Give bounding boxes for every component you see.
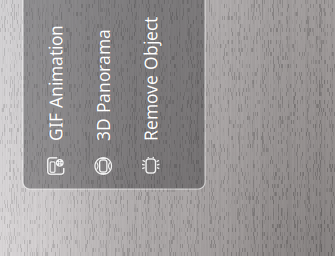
staticText: GIF Animation [60, 18, 176, 41]
staticText: Remove Object [60, 113, 184, 136]
button[interactable]: 3D Panorama [12, 53, 215, 100]
button[interactable]: GIF Animation [12, 5, 215, 53]
button[interactable]: Remove Object [12, 100, 215, 148]
staticText: 3D Panorama [60, 65, 172, 88]
